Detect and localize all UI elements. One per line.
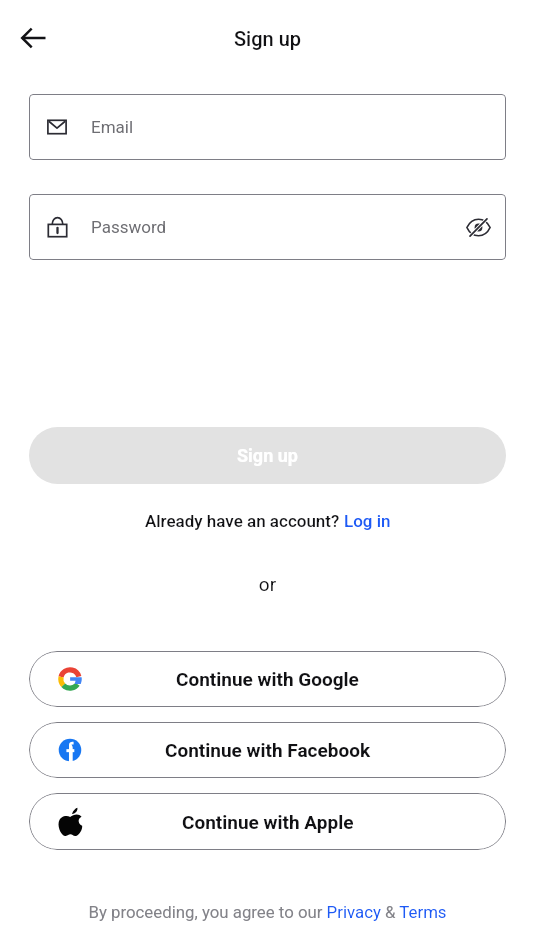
button[interactable]: Password [29,194,506,260]
button[interactable]: Continue with Apple [29,793,506,850]
button[interactable]: Continue with Google [29,651,506,707]
button[interactable]: Continue with Facebook [29,722,506,778]
staticText: Continue with Facebook [165,739,371,761]
staticText: Already have an account? [145,511,344,531]
staticText: Continue with Apple [182,811,354,833]
staticText: Password [91,217,167,237]
staticText: Sign up [0,27,535,50]
button[interactable]: Sign up [29,427,506,484]
staticText: Sign up [237,445,298,466]
button[interactable]: Back [13,17,55,59]
staticText: Continue with Google [176,668,359,690]
button[interactable]: Show password [459,208,497,246]
staticText: or [0,573,535,595]
button[interactable]: Email [29,94,506,160]
button[interactable]: Log in [344,511,391,531]
staticText: Email [91,117,134,137]
staticText: By proceeding, you agree to our Privacy … [0,902,535,922]
